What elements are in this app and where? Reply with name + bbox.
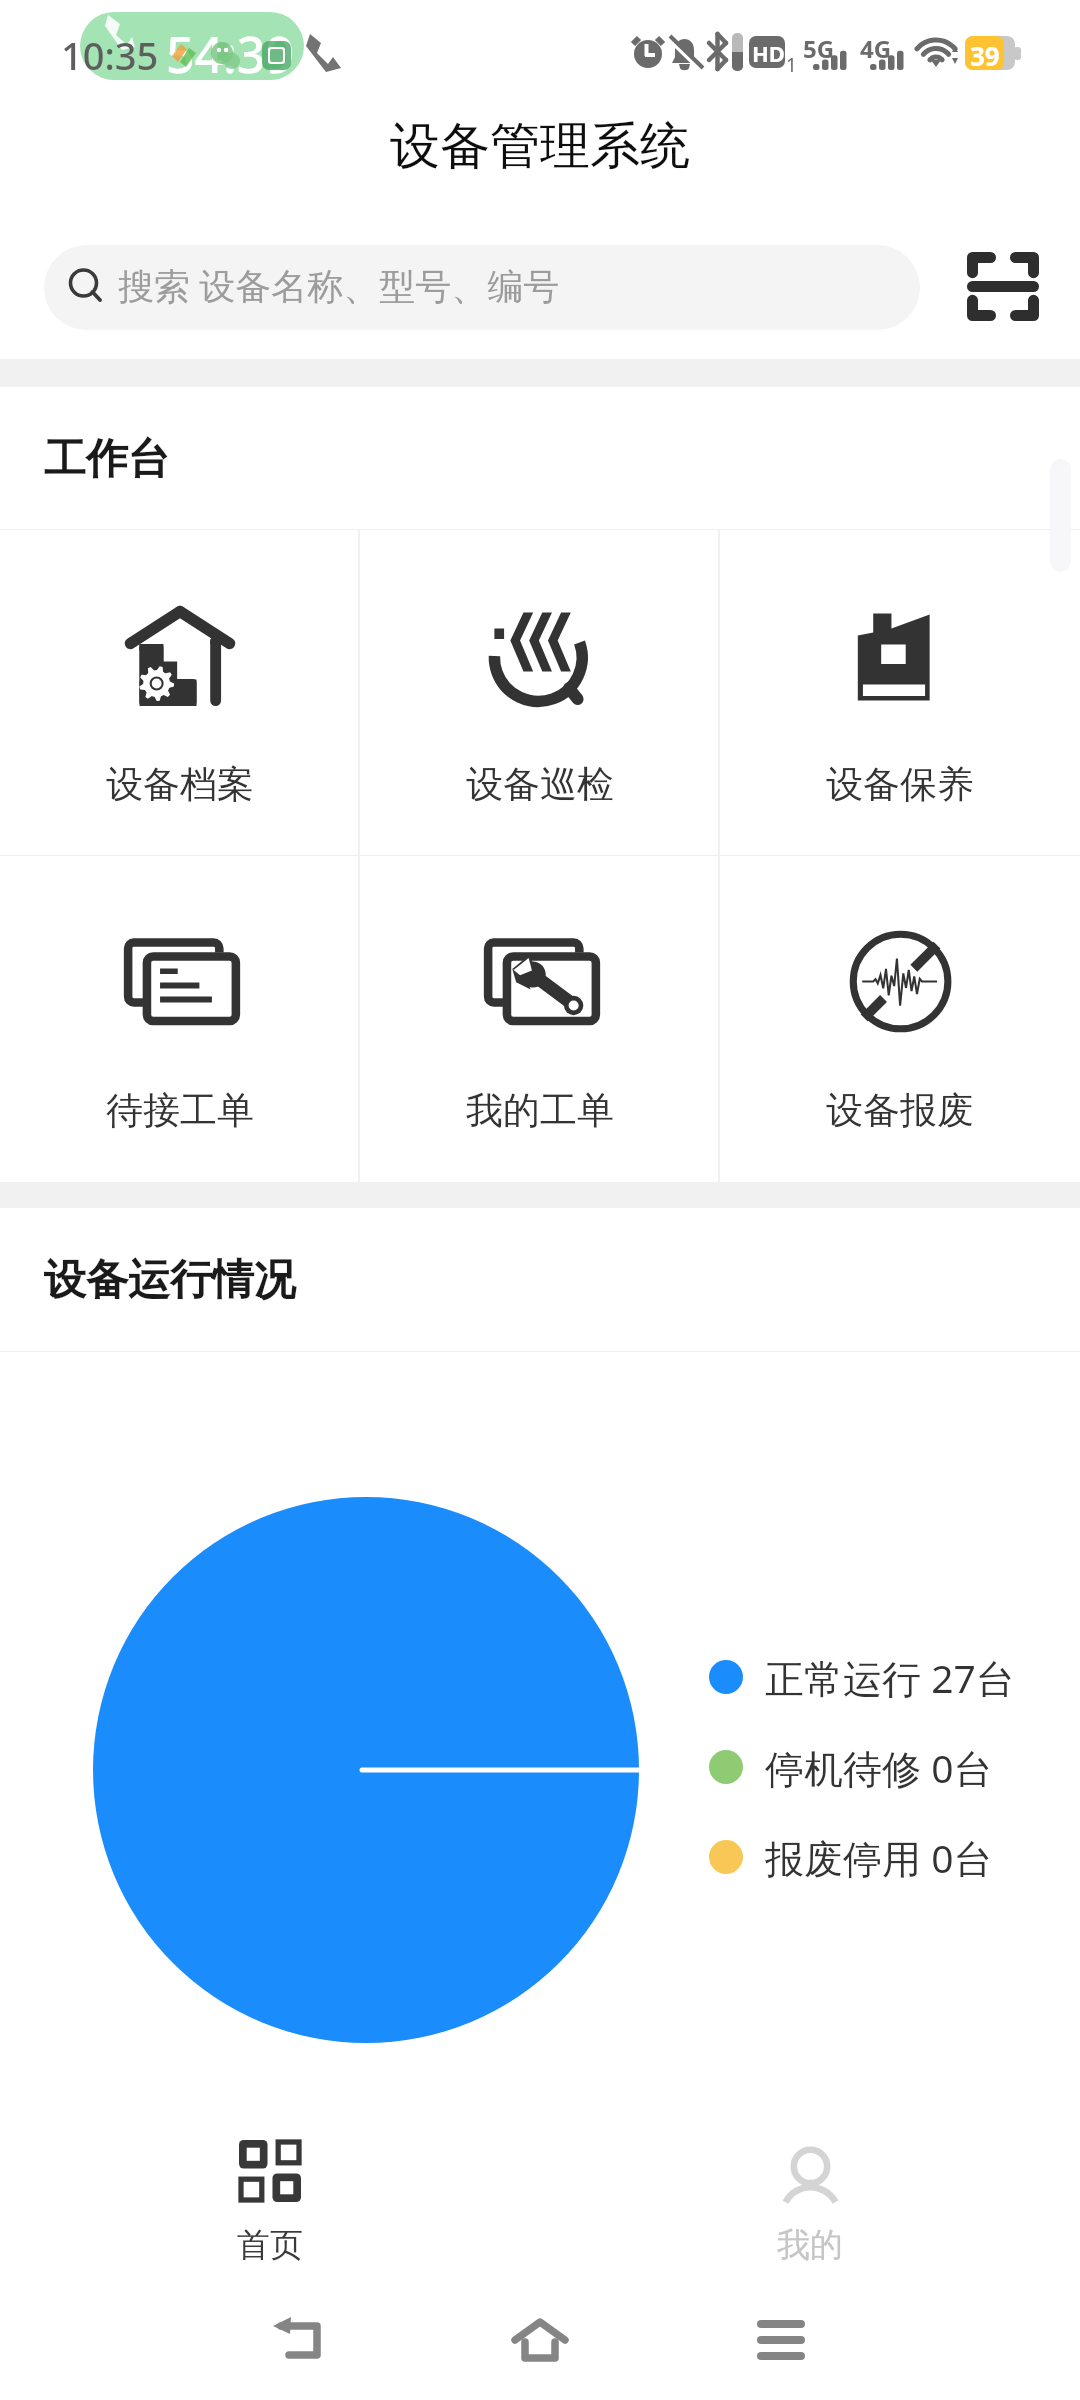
staticText: 设备管理系统	[390, 115, 690, 178]
button[interactable]: 设备巡检	[360, 530, 720, 856]
staticText: 1	[786, 52, 797, 78]
button[interactable]: 最近任务	[721, 2280, 841, 2400]
staticText: 我的	[777, 2224, 843, 2266]
staticText: 4G	[860, 32, 892, 65]
staticText: 搜索 设备名称、型号、编号	[118, 261, 560, 310]
button[interactable]: 设备档案	[0, 530, 360, 856]
staticText: 待接工单	[106, 1087, 254, 1134]
button[interactable]: 待接工单	[0, 856, 360, 1182]
staticText: 设备档案	[106, 761, 254, 808]
staticText: 工作台	[44, 433, 170, 486]
staticText: 设备保养	[826, 761, 974, 808]
button[interactable]: 我的工单	[360, 856, 720, 1182]
button[interactable]: 首页	[0, 2120, 540, 2280]
staticText: 39	[970, 38, 1000, 73]
staticText: 正常运行 27台	[765, 1651, 1015, 1704]
staticText: 54:39	[166, 20, 294, 88]
button[interactable]: 设备保养	[720, 530, 1080, 856]
staticText: 设备巡检	[466, 761, 614, 808]
button[interactable]: 我的	[540, 2120, 1080, 2280]
staticText: 10:35	[61, 29, 159, 81]
button[interactable]: 扫一扫	[953, 236, 1053, 336]
staticText: 报废停用 0台	[765, 1831, 993, 1884]
staticText: 我的工单	[466, 1087, 614, 1134]
staticText: 首页	[237, 2224, 303, 2266]
button[interactable]: 搜索 设备名称、型号、编号	[44, 245, 920, 330]
staticText: 5G	[803, 32, 835, 65]
button[interactable]: 返回	[239, 2280, 359, 2400]
staticText: HD	[752, 38, 785, 68]
staticText: 设备运行情况	[44, 1254, 296, 1307]
staticText: 设备报废	[826, 1087, 974, 1134]
staticText: 停机待修 0台	[765, 1741, 993, 1794]
button[interactable]: 设备报废	[720, 856, 1080, 1182]
button[interactable]: 主页	[480, 2280, 600, 2400]
